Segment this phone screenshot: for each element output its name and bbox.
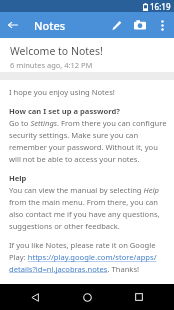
staticText: I hope you enjoy using Notes! (9, 87, 115, 97)
button[interactable]: Camera (128, 13, 152, 37)
button[interactable]: Back (0, 12, 26, 38)
button[interactable]: I hope you enjoy using Notes! (0, 80, 174, 284)
button[interactable]: More options (152, 15, 172, 35)
staticText: 6 minutes ago, 4:12 PM (10, 60, 93, 70)
button[interactable]: Edit note (104, 13, 128, 37)
button[interactable]: Recent apps (122, 284, 156, 310)
button[interactable]: Home (70, 284, 104, 310)
staticText: Notes (34, 18, 66, 33)
staticText: 16:19 (150, 1, 171, 12)
staticText: Help You can view the manual by selectin… (9, 173, 167, 231)
staticText: How can I set up a password? Go to Setti… (9, 106, 167, 164)
button[interactable]: Back (18, 284, 52, 310)
staticText: If you like Notes, please rate it on Goo… (9, 240, 167, 274)
staticText: Welcome to Notes! (10, 44, 103, 58)
button[interactable]: Welcome to Notes! (0, 38, 174, 72)
